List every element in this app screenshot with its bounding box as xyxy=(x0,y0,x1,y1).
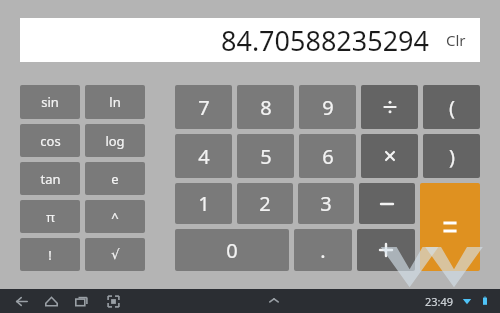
staticText: ln xyxy=(109,93,121,111)
button[interactable]: cos xyxy=(20,124,80,157)
staticText: 3 xyxy=(320,190,332,217)
button[interactable]: Equals xyxy=(420,183,480,271)
button[interactable]: 1 xyxy=(175,183,232,224)
staticText: 9 xyxy=(322,94,334,121)
button[interactable]: 3 xyxy=(298,183,354,224)
button[interactable]: Minus xyxy=(359,183,415,224)
button[interactable]: sin xyxy=(20,85,80,119)
staticText: . xyxy=(320,237,326,264)
staticText: cos xyxy=(40,132,61,150)
button[interactable]: ^ xyxy=(85,200,145,233)
staticText: sin xyxy=(41,93,59,111)
button[interactable]: e xyxy=(85,162,145,195)
button[interactable]: 7 xyxy=(175,85,232,129)
staticText: 1 xyxy=(198,190,210,217)
button[interactable]: Back xyxy=(10,290,32,312)
button[interactable]: ) xyxy=(423,134,480,178)
staticText: 7 xyxy=(198,94,210,121)
button[interactable]: 84.70588235294 xyxy=(20,18,480,62)
staticText: √ xyxy=(111,247,120,262)
button[interactable]: Home xyxy=(40,290,62,312)
button[interactable]: 5 xyxy=(237,134,294,178)
staticText: π xyxy=(46,208,55,226)
button[interactable]: ln xyxy=(85,85,145,119)
staticText: 2 xyxy=(259,190,271,217)
button[interactable]: ( xyxy=(423,85,480,129)
staticText: 4 xyxy=(198,143,210,170)
button[interactable]: 2 xyxy=(237,183,293,224)
button[interactable]: Screenshot xyxy=(102,290,124,312)
button[interactable]: . xyxy=(294,229,352,271)
staticText: 6 xyxy=(322,143,334,170)
staticText: ) xyxy=(449,143,455,170)
button[interactable]: log xyxy=(85,124,145,157)
staticText: X-HW.BY xyxy=(424,290,484,309)
button[interactable]: 0 xyxy=(175,229,289,271)
staticText: 5 xyxy=(260,143,272,170)
staticText: ^ xyxy=(111,208,119,226)
button[interactable]: Recent apps xyxy=(70,290,92,312)
button[interactable]: Show apps xyxy=(263,290,285,312)
staticText: 0 xyxy=(226,237,238,264)
other: Battery xyxy=(478,294,492,308)
staticText: 23:49 xyxy=(425,294,454,309)
button[interactable]: Multiply xyxy=(361,134,418,178)
button[interactable]: tan xyxy=(20,162,80,195)
staticText: ( xyxy=(449,94,455,121)
button[interactable]: 6 xyxy=(299,134,356,178)
button[interactable]: Divide xyxy=(361,85,418,129)
staticText: Clr xyxy=(446,30,466,50)
button[interactable]: Plus xyxy=(357,229,415,271)
staticText: tan xyxy=(40,170,61,188)
staticText: e xyxy=(111,170,119,188)
button[interactable]: π xyxy=(20,200,80,233)
staticText: log xyxy=(105,132,125,150)
staticText: 8 xyxy=(260,94,272,121)
button[interactable]: √ xyxy=(85,238,145,271)
staticText: ! xyxy=(48,246,52,264)
button[interactable]: 8 xyxy=(237,85,294,129)
other: Wi-Fi xyxy=(460,294,474,308)
button[interactable]: ! xyxy=(20,238,80,271)
button[interactable]: 4 xyxy=(175,134,232,178)
staticText: 84.70588235294 xyxy=(221,22,430,59)
button[interactable]: 9 xyxy=(299,85,356,129)
